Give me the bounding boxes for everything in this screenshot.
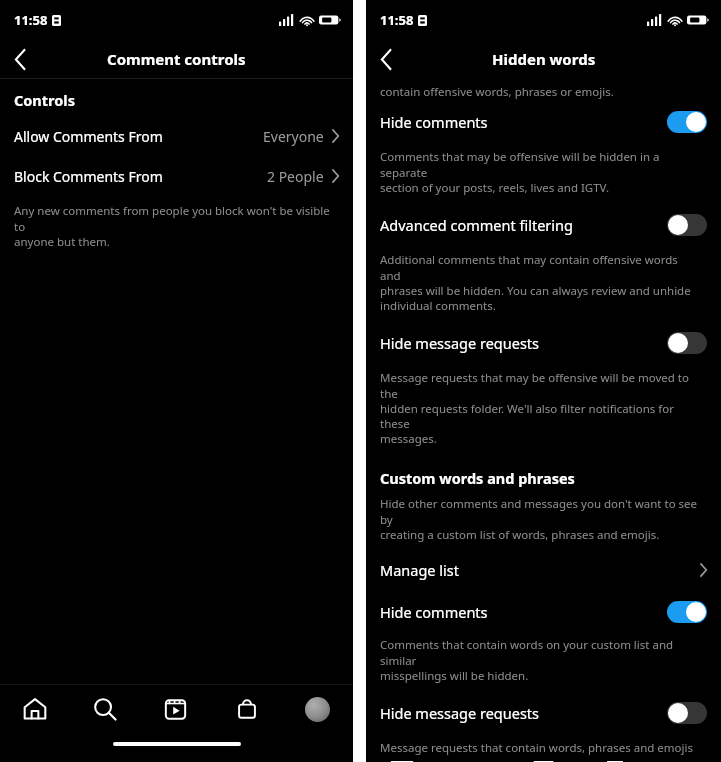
- button[interactable]: Reels: [140, 685, 211, 733]
- staticText: Advanced comment filtering: [380, 215, 573, 235]
- staticText: Comments that may be offensive will be h…: [380, 149, 701, 195]
- staticText: Comment controls: [107, 49, 246, 69]
- staticText: Additional comments that may contain off…: [380, 252, 701, 313]
- button[interactable]: Allow Comments From: [0, 118, 353, 154]
- button[interactable]: Hide message requests: [366, 691, 721, 735]
- button[interactable]: Profile: [282, 685, 353, 733]
- staticText: Controls: [14, 90, 75, 110]
- button[interactable]: Hide message requests: [366, 321, 721, 365]
- button[interactable]: Back: [0, 40, 40, 78]
- button[interactable]: Advanced comment filtering: [366, 203, 721, 247]
- button[interactable]: Shop: [211, 685, 282, 733]
- button[interactable]: Hide comments: [366, 100, 721, 144]
- staticText: Custom words and phrases: [380, 468, 575, 488]
- button[interactable]: Hide comments: [366, 590, 721, 634]
- staticText: Hide comments: [380, 112, 488, 132]
- staticText: Hide comments: [380, 602, 488, 622]
- staticText: 11:58: [14, 11, 48, 29]
- staticText: contain offensive words, phrases or emoj…: [380, 84, 614, 100]
- staticText: Hide message requests: [380, 703, 540, 723]
- button[interactable]: Manage list: [366, 550, 721, 590]
- staticText: Comments that contain words on your cust…: [380, 637, 701, 683]
- staticText: Hidden words: [492, 49, 596, 69]
- staticText: Hide message requests: [380, 333, 540, 353]
- staticText: Everyone: [263, 127, 324, 146]
- button[interactable]: Back: [366, 40, 406, 78]
- staticText: Manage list: [380, 560, 459, 580]
- staticText: 2 People: [267, 167, 324, 186]
- staticText: 11:58: [380, 11, 414, 29]
- staticText: Any new comments from people you block w…: [14, 203, 333, 249]
- staticText: Message requests that contain words, phr…: [380, 740, 701, 758]
- staticText: Allow Comments From: [14, 127, 163, 146]
- staticText: Hide other comments and messages you don…: [380, 496, 701, 542]
- staticText: Block Comments From: [14, 167, 163, 186]
- button[interactable]: Search: [70, 685, 140, 733]
- button[interactable]: Block Comments From: [0, 158, 353, 194]
- staticText: Message requests that may be offensive w…: [380, 370, 701, 446]
- button[interactable]: Home: [0, 685, 70, 733]
